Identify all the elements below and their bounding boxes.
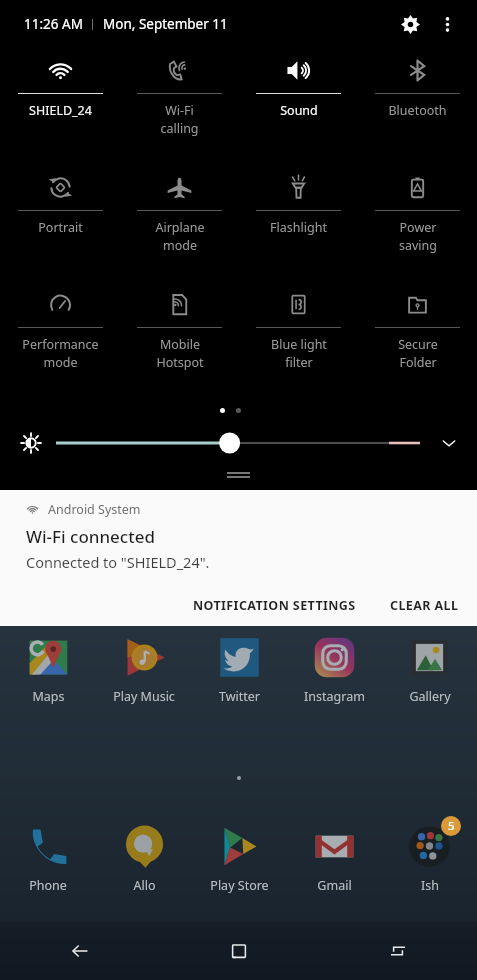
button[interactable]: Gmail <box>287 820 382 915</box>
staticText: Ish <box>421 877 439 894</box>
button[interactable]: Airplane mode <box>120 165 239 282</box>
staticText: Wi-Fi connected <box>26 525 155 548</box>
staticText: Play Store <box>210 877 269 894</box>
staticText: Gallery <box>409 688 451 705</box>
button[interactable]: NOTIFICATION SETTINGS <box>182 588 367 623</box>
staticText: Phone <box>29 877 67 894</box>
button[interactable]: Instagram <box>287 631 382 726</box>
staticText: Airplane mode <box>155 219 205 253</box>
button[interactable] <box>56 428 420 458</box>
button[interactable]: Secure Folder <box>358 282 477 399</box>
button[interactable]: Maps <box>0 631 96 726</box>
staticText: Bluetooth <box>388 102 447 119</box>
staticText: 11:26 AM <box>24 15 83 33</box>
staticText: Blue light filter <box>271 336 327 370</box>
staticText: Maps <box>32 688 65 705</box>
staticText: NOTIFICATION SETTINGS <box>193 597 356 614</box>
staticText: SHIELD_24 <box>29 102 92 119</box>
button[interactable]: Power saving <box>358 165 477 282</box>
staticText: Android System <box>48 501 141 518</box>
staticText: Allo <box>133 877 156 894</box>
staticText: Portrait <box>38 219 83 236</box>
button[interactable]: SHIELD_24 <box>0 48 120 165</box>
staticText: Flashlight <box>270 219 327 236</box>
button[interactable]: Back <box>0 922 159 980</box>
button[interactable]: Home <box>159 922 318 980</box>
staticText: Mon, September 11 <box>103 15 228 33</box>
button[interactable]: Twitter <box>192 631 287 726</box>
button[interactable]: Blue light filter <box>239 282 358 399</box>
button[interactable]: More options <box>430 7 464 41</box>
button[interactable]: Sound <box>239 48 358 165</box>
button[interactable]: Settings <box>390 4 430 44</box>
staticText: Instagram <box>304 688 365 705</box>
button[interactable]: Performance mode <box>0 282 120 399</box>
button[interactable]: Wi-Fi calling <box>120 48 239 165</box>
staticText: Performance mode <box>22 336 99 370</box>
button[interactable]: Phone <box>0 820 96 915</box>
staticText: Play Music <box>113 688 175 705</box>
button[interactable]: CLEAR ALL <box>379 588 470 623</box>
staticText: Twitter <box>219 688 260 705</box>
button[interactable]: Portrait <box>0 165 120 282</box>
staticText: CLEAR ALL <box>390 597 459 614</box>
staticText: Wi-Fi calling <box>160 102 199 136</box>
staticText: Secure Folder <box>398 336 438 370</box>
button[interactable]: 5 <box>382 820 477 915</box>
staticText: 5 <box>448 818 455 834</box>
button[interactable]: Play Store <box>192 820 287 915</box>
button[interactable]: Flashlight <box>239 165 358 282</box>
staticText: Connected to "SHIELD_24". <box>26 552 210 572</box>
button[interactable]: Gallery <box>382 631 477 726</box>
staticText: Sound <box>280 102 318 119</box>
button[interactable]: Android System <box>0 490 477 585</box>
staticText: Power saving <box>399 219 437 253</box>
staticText: Gmail <box>317 877 352 894</box>
button[interactable]: Play Music <box>96 631 192 726</box>
button[interactable]: Allo <box>96 820 192 915</box>
button[interactable]: Recent apps <box>318 922 477 980</box>
staticText: Mobile Hotspot <box>156 336 204 370</box>
button[interactable]: Bluetooth <box>358 48 477 165</box>
button[interactable]: Expand brightness controls <box>432 426 466 460</box>
button[interactable]: Mobile Hotspot <box>120 282 239 399</box>
